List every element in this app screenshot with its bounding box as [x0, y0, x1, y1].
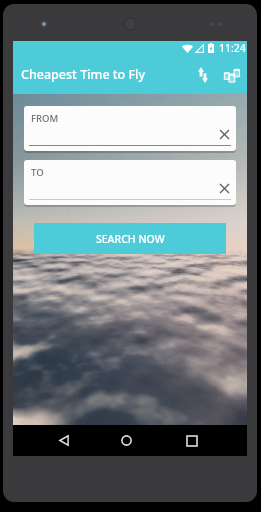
button[interactable]: TO	[24, 160, 236, 205]
staticText: FROM	[31, 112, 59, 125]
button[interactable]: Saved searches	[219, 62, 245, 88]
staticText: SEARCH NOW	[96, 232, 165, 246]
button[interactable]: Swap origin and destination	[190, 62, 216, 88]
button[interactable]: FROM	[24, 106, 236, 151]
button[interactable]: Back	[44, 425, 84, 456]
button[interactable]: Clear	[216, 126, 232, 142]
button[interactable]: Recent apps	[172, 425, 212, 456]
staticText: 11:24	[219, 41, 246, 55]
button[interactable]: Home	[106, 425, 146, 456]
staticText: Cheapest Time to Fly	[21, 66, 146, 83]
button[interactable]: SEARCH NOW	[34, 223, 226, 254]
staticText: TO	[31, 166, 44, 179]
button[interactable]: Clear	[216, 180, 232, 196]
